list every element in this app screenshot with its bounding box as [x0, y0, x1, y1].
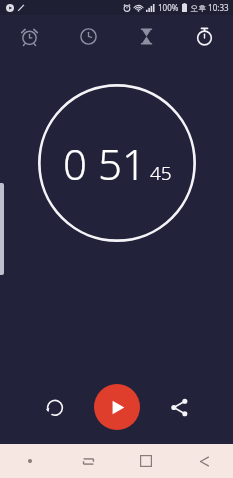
button[interactable]: Back — [175, 444, 233, 478]
button[interactable]: Stopwatch — [175, 15, 233, 57]
button[interactable]: Share — [140, 383, 218, 431]
button[interactable]: Timer — [117, 15, 175, 57]
button[interactable]: Home — [117, 444, 175, 478]
button[interactable]: Alarm — [0, 15, 59, 57]
staticText: 45 — [150, 160, 172, 186]
staticText: 오후 10:33 — [190, 2, 229, 13]
button[interactable]: World clock — [59, 15, 117, 57]
button[interactable]: Reset — [16, 383, 94, 431]
button[interactable]: Recents — [59, 444, 117, 478]
button[interactable]: Start — [94, 384, 140, 430]
staticText: 0 51 — [63, 135, 146, 192]
staticText: 100% — [158, 2, 179, 13]
button[interactable]: Menu dot — [0, 444, 59, 478]
